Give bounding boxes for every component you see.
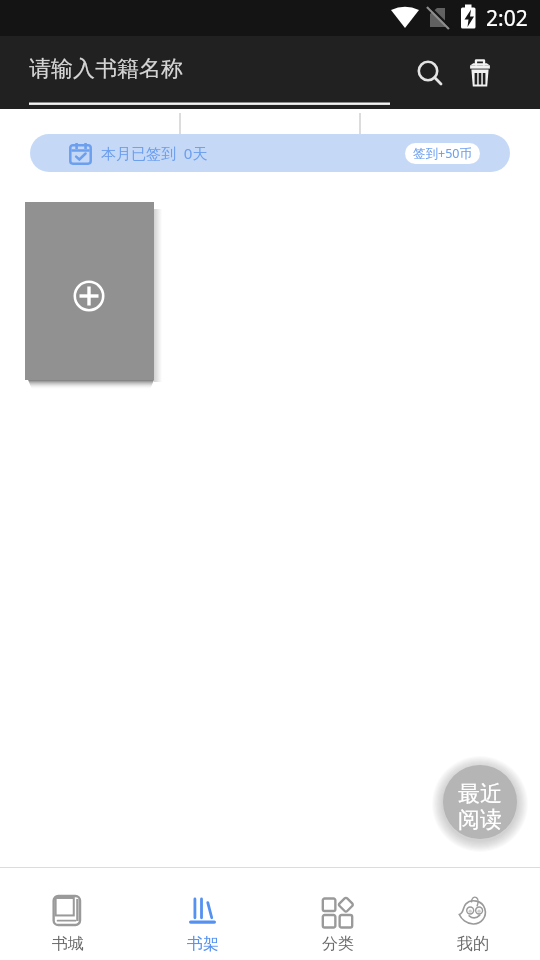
staticText: 书城 [52,934,84,954]
button[interactable]: 分类 [270,868,405,960]
staticText: 签到+50币 [413,145,472,162]
staticText: 请输入书籍名称 [29,55,183,83]
button[interactable]: 签到+50币 [405,143,480,164]
staticText: 本月已签到 0天 [101,143,208,163]
staticText: 分类 [322,934,354,954]
button[interactable]: 本月已签到 0天 [30,134,510,172]
button[interactable]: 书架 [135,868,270,960]
button[interactable]: Add book [25,202,154,380]
staticText: 书架 [187,934,219,954]
staticText: 最近 阅读 [458,780,502,833]
button[interactable]: 我的 [405,868,540,960]
button[interactable]: Delete [458,49,502,93]
button[interactable]: Search [406,49,450,93]
button[interactable]: 书城 [0,868,135,960]
button[interactable]: Recently read [443,765,517,839]
staticText: 我的 [457,934,489,954]
staticText: 2:02 [486,4,528,33]
